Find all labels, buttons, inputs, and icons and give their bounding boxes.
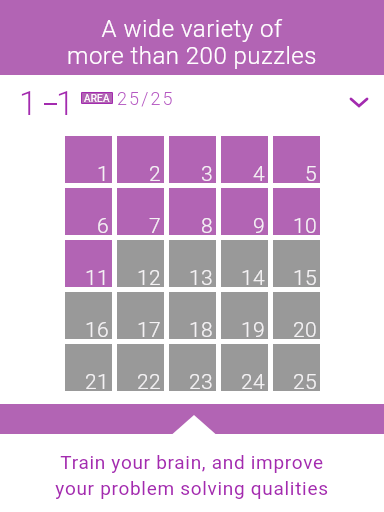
staticText: 16 <box>85 318 110 343</box>
button[interactable]: 11 <box>65 240 112 287</box>
button[interactable]: 4 <box>221 136 268 183</box>
staticText: 25 <box>293 370 318 395</box>
button[interactable]: 24 <box>221 344 268 391</box>
staticText: 8 <box>201 214 214 239</box>
staticText: 15 <box>293 266 318 291</box>
button[interactable]: 10 <box>273 188 320 235</box>
button[interactable]: Collapse <box>337 80 381 124</box>
staticText: 13 <box>189 266 214 291</box>
button[interactable]: 15 <box>273 240 320 287</box>
button[interactable]: 9 <box>221 188 268 235</box>
staticText: 24 <box>241 370 266 395</box>
button[interactable]: 18 <box>169 292 216 339</box>
button[interactable]: 7 <box>117 188 164 235</box>
staticText: 12 <box>137 266 162 291</box>
staticText: AREA <box>84 93 110 103</box>
staticText: 5 <box>305 162 318 187</box>
button[interactable]: 16 <box>65 292 112 339</box>
staticText: 23 <box>189 370 214 395</box>
button[interactable]: 20 <box>273 292 320 339</box>
staticText: 20 <box>293 318 318 343</box>
staticText: 11 <box>85 266 110 291</box>
staticText: 4 <box>253 162 266 187</box>
button[interactable]: 22 <box>117 344 164 391</box>
button[interactable]: 21 <box>65 344 112 391</box>
staticText: 19 <box>241 318 266 343</box>
staticText: 25/25 <box>117 88 175 109</box>
staticText: 6 <box>97 214 110 239</box>
button[interactable]: 8 <box>169 188 216 235</box>
button[interactable]: 2 <box>117 136 164 183</box>
button[interactable]: 19 <box>221 292 268 339</box>
button[interactable]: 13 <box>169 240 216 287</box>
button[interactable]: 17 <box>117 292 164 339</box>
button[interactable]: 1 <box>0 75 384 136</box>
button[interactable]: 12 <box>117 240 164 287</box>
staticText: 3 <box>201 162 214 187</box>
staticText: 14 <box>241 266 266 291</box>
staticText: Train your brain, and improve your probl… <box>55 451 329 499</box>
button[interactable]: 14 <box>221 240 268 287</box>
button[interactable]: 23 <box>169 344 216 391</box>
button[interactable]: 25 <box>273 344 320 391</box>
button[interactable]: 6 <box>65 188 112 235</box>
staticText: 9 <box>253 214 266 239</box>
staticText: A wide variety of more than 200 puzzles <box>67 15 317 70</box>
staticText: 1 <box>97 162 110 187</box>
staticText: 22 <box>137 370 162 395</box>
staticText: 7 <box>149 214 162 239</box>
staticText: 2 <box>149 162 162 187</box>
staticText: 10 <box>293 214 318 239</box>
button[interactable]: 1 <box>65 136 112 183</box>
staticText: 21 <box>85 370 110 395</box>
button[interactable]: 5 <box>273 136 320 183</box>
staticText: 18 <box>189 318 214 343</box>
staticText: 17 <box>137 318 162 343</box>
button[interactable]: 3 <box>169 136 216 183</box>
staticText: 1 <box>19 84 38 123</box>
staticText: 1 <box>56 84 75 123</box>
